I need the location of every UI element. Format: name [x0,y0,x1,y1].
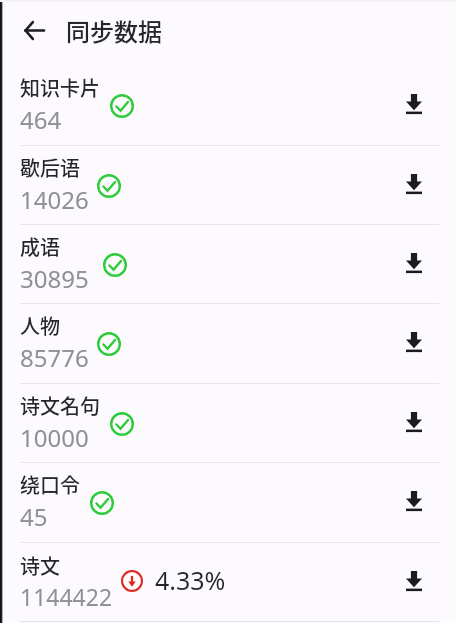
button[interactable]: 知识卡片 [0,66,456,146]
button[interactable]: Download [396,245,432,281]
button[interactable]: Download [396,324,432,360]
staticText: 歇后语 [20,153,80,182]
button[interactable]: Download [396,86,432,122]
button[interactable]: 成语 [0,225,456,304]
button[interactable]: Download [396,563,432,599]
button[interactable]: 歇后语 [0,146,456,225]
staticText: 464 [20,103,62,136]
staticText: 诗文名句 [20,391,100,420]
staticText: 人物 [20,311,60,340]
staticText: 10000 [20,421,89,454]
staticText: 4.33% [155,563,226,597]
staticText: 85776 [20,341,89,374]
staticText: 14026 [20,183,89,216]
staticText: 成语 [20,232,60,261]
button[interactable]: 人物 [0,304,456,384]
staticText: 1144422 [20,581,113,612]
staticText: 30895 [20,262,89,295]
button[interactable]: 绕口令 [0,463,456,543]
staticText: 知识卡片 [20,73,100,102]
button[interactable]: Download [396,483,432,519]
staticText: 45 [20,500,48,533]
button[interactable]: Back [12,8,56,52]
button[interactable]: Download [396,166,432,202]
staticText: 绕口令 [20,470,80,499]
staticText: 诗文 [20,551,60,580]
staticText: 同步数据 [66,13,162,48]
button[interactable]: 诗文 [0,543,456,622]
button[interactable]: Download [396,404,432,440]
button[interactable]: 诗文名句 [0,384,456,463]
